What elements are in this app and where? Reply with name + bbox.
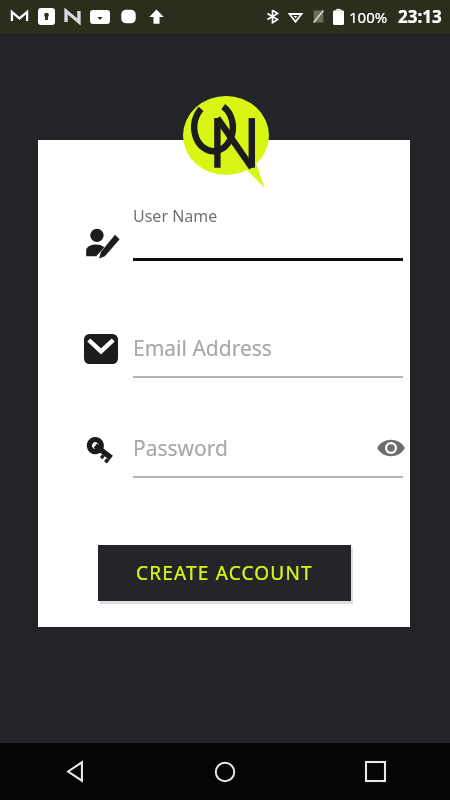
staticText: User Name [133, 205, 218, 227]
button[interactable]: User Name [46, 200, 410, 292]
button[interactable]: Show password [376, 435, 406, 461]
button[interactable]: Password [46, 418, 410, 492]
button[interactable]: Home [150, 743, 300, 800]
button[interactable]: Recent apps [300, 743, 450, 800]
staticText: Email Address [133, 334, 272, 363]
button[interactable]: CREATE ACCOUNT [98, 545, 351, 601]
staticText: Password [133, 434, 228, 463]
staticText: 100% [349, 7, 388, 27]
button[interactable]: Email Address [46, 318, 410, 392]
staticText: CREATE ACCOUNT [136, 560, 313, 586]
staticText: 23:13 [398, 5, 442, 28]
button[interactable]: Back [0, 743, 150, 800]
